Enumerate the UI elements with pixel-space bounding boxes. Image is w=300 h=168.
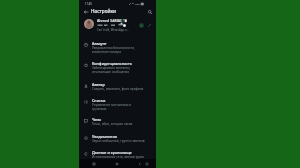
button[interactable]: Keyboard <box>143 160 150 167</box>
staticText: Звуки сообщений, групп и звонков <box>92 139 145 143</box>
staticText: Чаты <box>92 117 102 122</box>
staticText: Конфиденциальность <box>92 61 132 66</box>
staticText: Заблокировать контакты, исчезающие сообщ… <box>92 66 131 74</box>
staticText: Аватар <box>92 82 105 87</box>
staticText: 11:45 <box>85 2 92 6</box>
staticText: Настройки <box>91 8 117 14</box>
staticText: Уведомления безопасности, изменение номе… <box>92 46 135 54</box>
staticText: 78% <box>135 2 140 5</box>
button[interactable]: Edit avatar <box>146 22 152 28</box>
button[interactable]: Back <box>82 8 89 15</box>
staticText: Ahmed SAMAI 🇩🇿 <box>97 18 127 23</box>
staticText: Использование сети, автозагрузка <box>92 155 144 159</box>
button[interactable]: Аккаунт <box>79 41 156 55</box>
button[interactable]: Ahmed SAMAI 🇩🇿 <box>79 15 156 33</box>
button[interactable]: Конфиденциальность <box>79 61 156 75</box>
staticText: Уведомления <box>92 134 117 139</box>
staticText: Can't talk, WhatsApp o... <box>97 28 129 32</box>
staticText: Темы, обои, история чатов <box>92 122 133 126</box>
staticText: Аккаунт <box>92 41 107 46</box>
staticText: Создать, изменить, фото профиля <box>92 87 144 91</box>
button[interactable]: Чаты <box>79 117 156 127</box>
staticText: Управление контактами и группами <box>92 103 132 111</box>
button[interactable]: Уведомления <box>79 134 156 144</box>
button[interactable]: Search <box>146 8 153 15</box>
button[interactable]: Списки <box>79 98 156 112</box>
button[interactable]: Recents <box>90 160 97 167</box>
staticText: Списки <box>92 98 106 103</box>
button[interactable]: QR code <box>138 22 144 28</box>
button[interactable]: Back <box>136 160 143 167</box>
button[interactable]: Аватар <box>79 82 156 92</box>
button[interactable]: Home <box>113 160 120 167</box>
staticText: Данные и хранилище <box>92 150 132 155</box>
button[interactable]: Данные и хранилище <box>79 150 156 160</box>
